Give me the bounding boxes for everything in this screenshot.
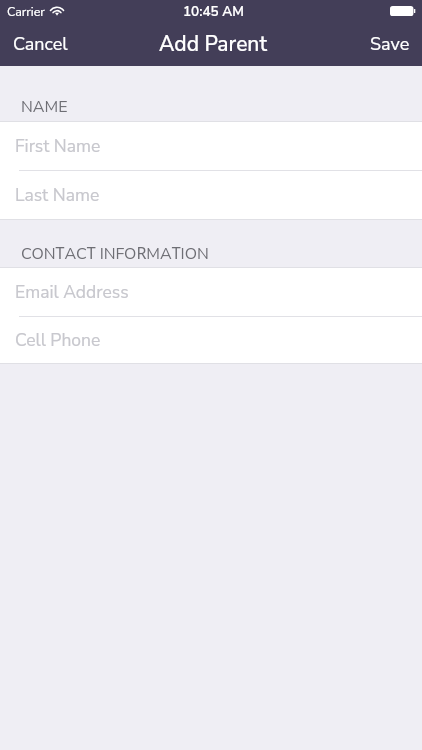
staticText: Cancel — [13, 32, 68, 57]
staticText: 10:45 AM — [183, 2, 244, 20]
button[interactable]: Cancel — [0, 23, 82, 66]
staticText: Carrier — [7, 3, 45, 20]
staticText: CONTACT INFORMATION — [21, 242, 209, 265]
staticText: NAME — [21, 96, 68, 118]
staticText: First Name — [15, 134, 101, 158]
other: Battery full — [390, 6, 416, 16]
button[interactable]: Email Address — [0, 268, 422, 316]
staticText: Last Name — [15, 183, 100, 207]
staticText: Cell Phone — [15, 328, 101, 352]
staticText: Save — [370, 32, 410, 57]
button[interactable]: Last Name — [0, 171, 422, 219]
other: Wi-Fi signal — [50, 6, 64, 16]
staticText: Add Parent — [159, 30, 267, 59]
button[interactable]: Cell Phone — [0, 317, 422, 363]
button[interactable]: Save — [356, 23, 422, 66]
button[interactable]: First Name — [0, 122, 422, 170]
staticText: Email Address — [15, 280, 129, 304]
